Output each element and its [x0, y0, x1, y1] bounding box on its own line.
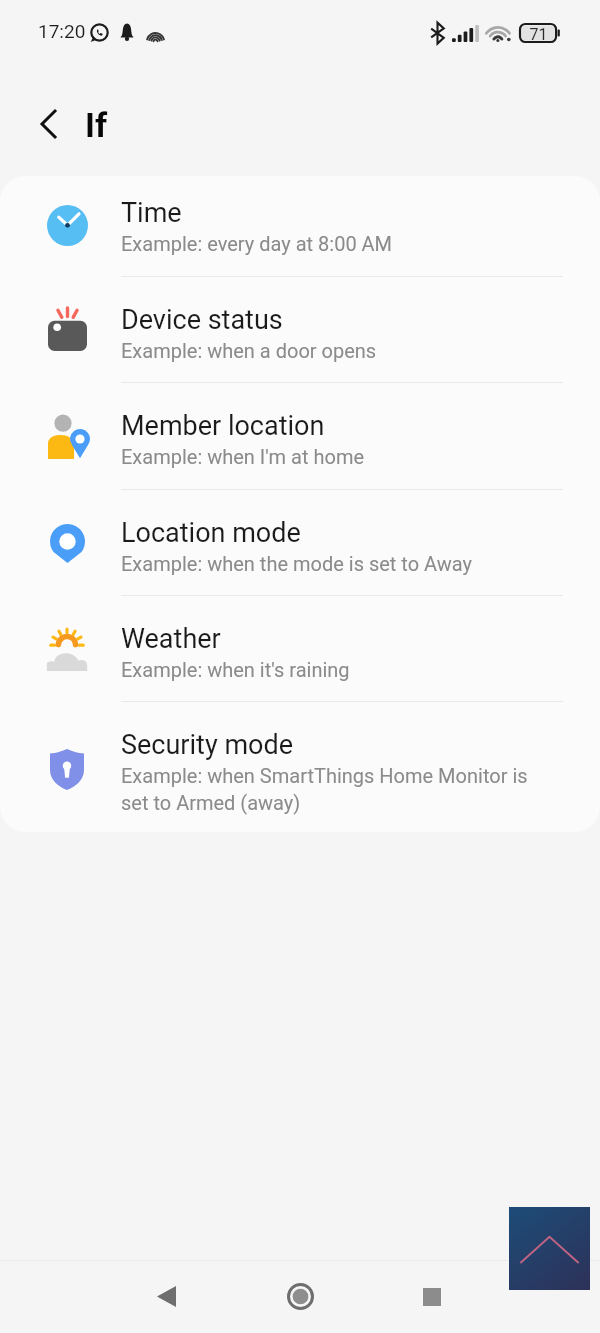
button[interactable]: Weather [0, 596, 600, 702]
staticText: If [85, 105, 108, 145]
button[interactable]: Home [272, 1268, 329, 1325]
button[interactable]: Member location [0, 383, 600, 490]
staticText: Example: when SmartThings Home Monitor i… [121, 764, 541, 815]
staticText: Example: when a door opens [121, 339, 377, 362]
staticText: Device status [121, 304, 283, 336]
staticText: Weather [121, 623, 221, 655]
staticText: Example: when I'm at home [121, 445, 365, 468]
button[interactable]: Back [138, 1268, 195, 1325]
button[interactable]: Back [21, 97, 75, 151]
button[interactable]: Location mode [0, 490, 600, 596]
staticText: Example: every day at 8:00 AM [121, 232, 393, 255]
staticText: 17:20 [38, 20, 86, 42]
staticText: Example: when the mode is set to Away [121, 552, 473, 575]
button[interactable]: Recents [403, 1268, 460, 1325]
staticText: Security mode [121, 729, 294, 761]
staticText: Location mode [121, 517, 301, 549]
button[interactable]: Device status [0, 277, 600, 383]
button[interactable]: Security mode [0, 702, 600, 832]
button[interactable]: Overlay widget [509, 1207, 590, 1290]
button[interactable]: Time [0, 176, 600, 277]
staticText: Time [121, 197, 182, 229]
staticText: Member location [121, 410, 325, 442]
staticText: Example: when it's raining [121, 658, 350, 681]
staticText: 71 [528, 25, 549, 44]
